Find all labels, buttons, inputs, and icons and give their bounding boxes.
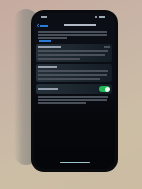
button[interactable] bbox=[36, 64, 112, 82]
button[interactable] bbox=[36, 44, 112, 62]
button[interactable] bbox=[36, 84, 112, 94]
button[interactable]: Back bbox=[36, 23, 49, 28]
